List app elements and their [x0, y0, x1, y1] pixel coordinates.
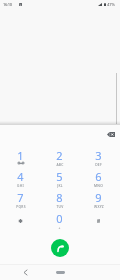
- button[interactable]: Call: [51, 239, 69, 257]
- button[interactable]: 1: [1, 147, 40, 168]
- button[interactable]: 3: [79, 147, 118, 168]
- staticText: +: [58, 225, 61, 229]
- staticText: MNO: [94, 183, 103, 187]
- staticText: 5: [56, 169, 63, 184]
- button[interactable]: 7: [1, 189, 40, 210]
- button[interactable]: Back: [19, 266, 31, 278]
- staticText: 2: [56, 148, 63, 163]
- button[interactable]: 4: [1, 168, 40, 189]
- staticText: GHI: [17, 183, 24, 187]
- button[interactable]: Home: [56, 271, 65, 274]
- staticText: 16:10: [3, 2, 12, 8]
- staticText: TUV: [56, 204, 64, 208]
- staticText: JKL: [57, 183, 63, 187]
- button[interactable]: 5: [40, 168, 79, 189]
- staticText: ABC: [56, 162, 64, 166]
- button[interactable]: 0: [40, 210, 79, 231]
- button[interactable]: Delete: [103, 127, 118, 141]
- staticText: 3: [95, 148, 102, 163]
- staticText: 47%: [107, 2, 115, 8]
- staticText: 4: [17, 169, 24, 184]
- staticText: 6: [95, 169, 102, 184]
- staticText: 8: [56, 190, 63, 205]
- button[interactable]: 2: [40, 147, 79, 168]
- staticText: 7: [17, 190, 24, 205]
- staticText: 0: [56, 211, 63, 226]
- staticText: 9: [95, 190, 102, 205]
- button[interactable]: [79, 210, 118, 231]
- button[interactable]: [1, 210, 40, 231]
- staticText: PQRS: [16, 204, 26, 208]
- staticText: 1: [17, 148, 24, 163]
- staticText: WXYZ: [94, 204, 104, 208]
- staticText: DEF: [95, 162, 102, 166]
- button[interactable]: 8: [40, 189, 79, 210]
- button[interactable]: 6: [79, 168, 118, 189]
- button[interactable]: 9: [79, 189, 118, 210]
